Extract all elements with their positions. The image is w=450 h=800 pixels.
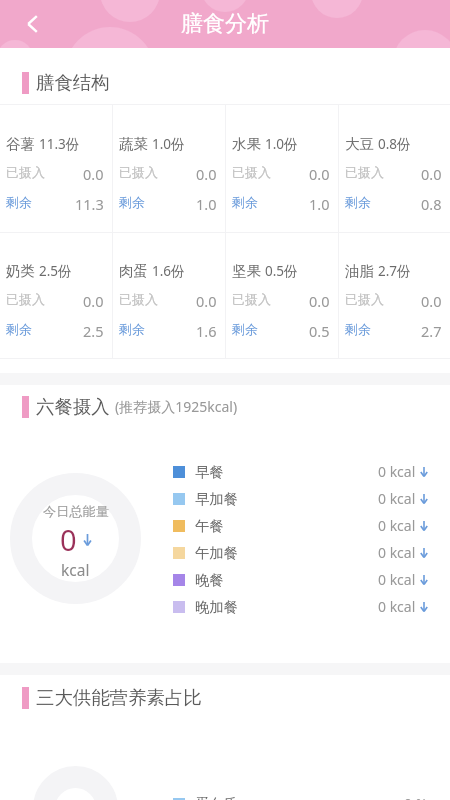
staticText: 六餐摄入 <box>36 395 110 418</box>
staticText: 已摄入 <box>119 291 158 307</box>
staticText: 0 kcal <box>378 543 416 562</box>
staticText: 今日总能量 <box>43 503 109 520</box>
staticText: 午餐 <box>195 517 224 535</box>
staticText: 2.7 <box>421 321 442 341</box>
staticText: 午加餐 <box>195 544 238 562</box>
staticText: 剩余 <box>119 194 145 210</box>
staticText: 0.0 <box>83 164 104 184</box>
button[interactable]: 午餐 <box>0 512 450 539</box>
staticText: 0 kcal <box>378 462 416 481</box>
staticText: 剩余 <box>232 194 258 210</box>
staticText: 已摄入 <box>6 291 45 307</box>
staticText: 剩余 <box>6 194 32 210</box>
staticText: 0.8份 <box>378 135 411 153</box>
staticText: 大豆 <box>345 135 374 153</box>
staticText: 油脂 <box>345 262 374 280</box>
staticText: 晚加餐 <box>195 598 238 616</box>
staticText: 0.8 <box>421 194 442 214</box>
staticText: 早加餐 <box>195 490 238 508</box>
staticText: 1.6份 <box>152 262 185 280</box>
staticText: 剩余 <box>345 194 371 210</box>
staticText: 三大供能营养素占比 <box>36 686 202 709</box>
staticText: 2.7份 <box>378 262 411 280</box>
staticText: 剩余 <box>232 321 258 337</box>
button[interactable]: 午加餐 <box>0 539 450 566</box>
staticText: 0 % <box>404 794 428 800</box>
staticText: 0.0 <box>83 291 104 311</box>
staticText: 肉蛋 <box>119 262 148 280</box>
staticText: 0 kcal <box>378 489 416 508</box>
staticText: 晚餐 <box>195 571 224 589</box>
staticText: 1.0份 <box>152 135 185 153</box>
staticText: 已摄入 <box>345 164 384 180</box>
staticText: 剩余 <box>345 321 371 337</box>
staticText: 11.3 <box>75 194 104 214</box>
staticText: 剩余 <box>6 321 32 337</box>
staticText: 膳食结构 <box>36 71 110 94</box>
button[interactable]: 晚加餐 <box>0 593 450 620</box>
button[interactable]: 晚餐 <box>0 566 450 593</box>
staticText: 0 kcal <box>378 516 416 535</box>
staticText: 已摄入 <box>345 291 384 307</box>
staticText: 0.5份 <box>265 262 298 280</box>
staticText: 0.0 <box>309 291 330 311</box>
staticText: 坚果 <box>232 262 261 280</box>
button[interactable]: 早餐 <box>0 458 450 485</box>
staticText: 2.5份 <box>39 262 72 280</box>
button[interactable]: Back <box>0 0 65 48</box>
staticText: 早餐 <box>195 463 224 481</box>
staticText: 已摄入 <box>232 291 271 307</box>
staticText: 1.0 <box>309 194 330 214</box>
staticText: 已摄入 <box>6 164 45 180</box>
staticText: 0 <box>60 520 77 559</box>
staticText: 1.0份 <box>265 135 298 153</box>
staticText: 0.0 <box>421 164 442 184</box>
staticText: 11.3份 <box>39 135 80 153</box>
staticText: 1.0 <box>196 194 217 214</box>
button[interactable]: 蛋白质 <box>0 790 450 800</box>
staticText: 已摄入 <box>119 164 158 180</box>
staticText: 谷薯 <box>6 135 35 153</box>
button[interactable]: 早加餐 <box>0 485 450 512</box>
staticText: kcal <box>61 559 90 580</box>
staticText: 0.5 <box>309 321 330 341</box>
staticText: 已摄入 <box>232 164 271 180</box>
staticText: 0 kcal <box>378 597 416 616</box>
staticText: 0.0 <box>196 164 217 184</box>
staticText: 蔬菜 <box>119 135 148 153</box>
staticText: 2.5 <box>83 321 104 341</box>
staticText: 蛋白质 <box>195 795 238 800</box>
staticText: 膳食分析 <box>181 10 269 38</box>
staticText: 奶类 <box>6 262 35 280</box>
staticText: 0 kcal <box>378 570 416 589</box>
staticText: 0.0 <box>196 291 217 311</box>
staticText: 1.6 <box>196 321 217 341</box>
staticText: (推荐摄入1925kcal) <box>115 397 238 416</box>
staticText: 0.0 <box>309 164 330 184</box>
staticText: 0.0 <box>421 291 442 311</box>
staticText: 水果 <box>232 135 261 153</box>
staticText: 剩余 <box>119 321 145 337</box>
